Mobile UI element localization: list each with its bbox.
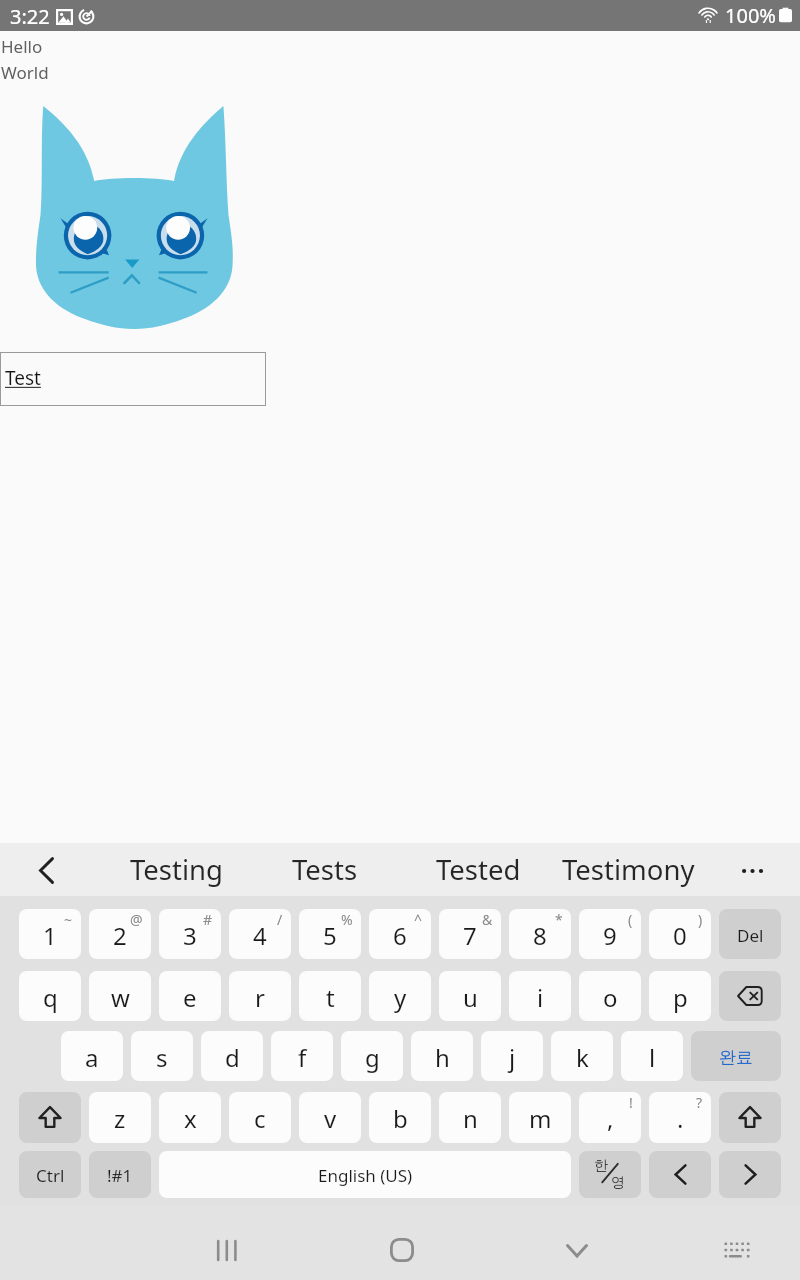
button[interactable]: Del: [719, 909, 781, 959]
staticText: 완료: [719, 1047, 753, 1068]
button[interactable]: Shift: [719, 1092, 781, 1143]
button[interactable]: n: [439, 1092, 501, 1143]
staticText: w: [111, 981, 130, 1014]
button[interactable]: 3: [159, 909, 221, 959]
button[interactable]: Language: [579, 1151, 641, 1198]
staticText: u: [463, 981, 478, 1014]
button[interactable]: 완료: [691, 1031, 781, 1081]
button[interactable]: i: [509, 971, 571, 1021]
button[interactable]: a: [61, 1031, 123, 1081]
staticText: 2: [113, 919, 127, 952]
staticText: Del: [737, 924, 764, 947]
button[interactable]: Testing: [104, 843, 248, 896]
staticText: 4: [253, 919, 267, 952]
button[interactable]: 0: [649, 909, 711, 959]
button[interactable]: Recents: [171, 1205, 283, 1280]
staticText: 100%: [725, 2, 776, 29]
staticText: ^: [414, 910, 423, 929]
staticText: i: [537, 981, 544, 1014]
button[interactable]: 8: [509, 909, 571, 959]
button[interactable]: p: [649, 971, 711, 1021]
button[interactable]: Back: [16, 843, 77, 896]
button[interactable]: Home: [345, 1205, 458, 1280]
button[interactable]: e: [159, 971, 221, 1021]
staticText: z: [114, 1102, 126, 1135]
button[interactable]: c: [229, 1092, 291, 1143]
staticText: %: [341, 910, 353, 929]
staticText: ,: [607, 1102, 614, 1135]
staticText: &: [482, 910, 493, 929]
staticText: /: [277, 910, 283, 929]
staticText: ): [698, 910, 703, 929]
button[interactable]: Next: [719, 1151, 781, 1198]
button[interactable]: Keyboard layout: [680, 1205, 791, 1280]
staticText: @: [130, 910, 143, 929]
button[interactable]: g: [341, 1031, 403, 1081]
button[interactable]: .: [649, 1092, 711, 1143]
button[interactable]: m: [509, 1092, 571, 1143]
button[interactable]: h: [411, 1031, 473, 1081]
button[interactable]: Shift: [19, 1092, 81, 1143]
button[interactable]: Hide keyboard: [521, 1205, 632, 1280]
button[interactable]: 6: [369, 909, 431, 959]
button[interactable]: 2: [89, 909, 151, 959]
button[interactable]: !#1: [89, 1151, 151, 1198]
button[interactable]: Previous: [649, 1151, 711, 1198]
button[interactable]: l: [621, 1031, 683, 1081]
staticText: Tested: [436, 851, 521, 888]
staticText: c: [254, 1102, 266, 1135]
button[interactable]: Test: [0, 352, 266, 406]
staticText: 3:22: [10, 3, 50, 30]
button[interactable]: x: [159, 1092, 221, 1143]
button[interactable]: ,: [579, 1092, 641, 1143]
button[interactable]: v: [299, 1092, 361, 1143]
button[interactable]: q: [19, 971, 81, 1021]
button[interactable]: z: [89, 1092, 151, 1143]
staticText: x: [184, 1102, 197, 1135]
staticText: 7: [463, 919, 477, 952]
button[interactable]: j: [481, 1031, 543, 1081]
staticText: !#1: [107, 1164, 133, 1187]
staticText: l: [649, 1041, 656, 1074]
button[interactable]: b: [369, 1092, 431, 1143]
button[interactable]: English (US): [159, 1151, 571, 1198]
staticText: English (US): [318, 1164, 413, 1187]
button[interactable]: 7: [439, 909, 501, 959]
button[interactable]: o: [579, 971, 641, 1021]
button[interactable]: s: [131, 1031, 193, 1081]
button[interactable]: More options: [722, 843, 783, 896]
staticText: 한: [594, 1157, 608, 1175]
staticText: .: [677, 1102, 684, 1135]
staticText: a: [85, 1041, 99, 1074]
button[interactable]: k: [551, 1031, 613, 1081]
button[interactable]: u: [439, 971, 501, 1021]
button[interactable]: t: [299, 971, 361, 1021]
staticText: r: [255, 981, 265, 1014]
staticText: *: [555, 910, 563, 929]
button[interactable]: Tested: [406, 843, 550, 896]
staticText: b: [393, 1102, 408, 1135]
staticText: o: [603, 981, 618, 1014]
button[interactable]: w: [89, 971, 151, 1021]
staticText: Tests: [292, 851, 358, 888]
button[interactable]: y: [369, 971, 431, 1021]
staticText: 영: [611, 1174, 625, 1192]
staticText: Testimony: [562, 851, 695, 888]
staticText: v: [324, 1102, 337, 1135]
button[interactable]: Tests: [253, 843, 397, 896]
button[interactable]: 4: [229, 909, 291, 959]
button[interactable]: Ctrl: [19, 1151, 81, 1198]
button[interactable]: 5: [299, 909, 361, 959]
button[interactable]: Testimony: [556, 843, 700, 896]
staticText: Hello: [1, 35, 43, 58]
staticText: d: [225, 1041, 240, 1074]
staticText: n: [463, 1102, 478, 1135]
button[interactable]: Backspace: [719, 971, 781, 1021]
button[interactable]: 9: [579, 909, 641, 959]
staticText: ?: [696, 1093, 703, 1112]
button[interactable]: f: [271, 1031, 333, 1081]
button[interactable]: d: [201, 1031, 263, 1081]
button[interactable]: 1: [19, 909, 81, 959]
button[interactable]: r: [229, 971, 291, 1021]
staticText: e: [183, 981, 197, 1014]
